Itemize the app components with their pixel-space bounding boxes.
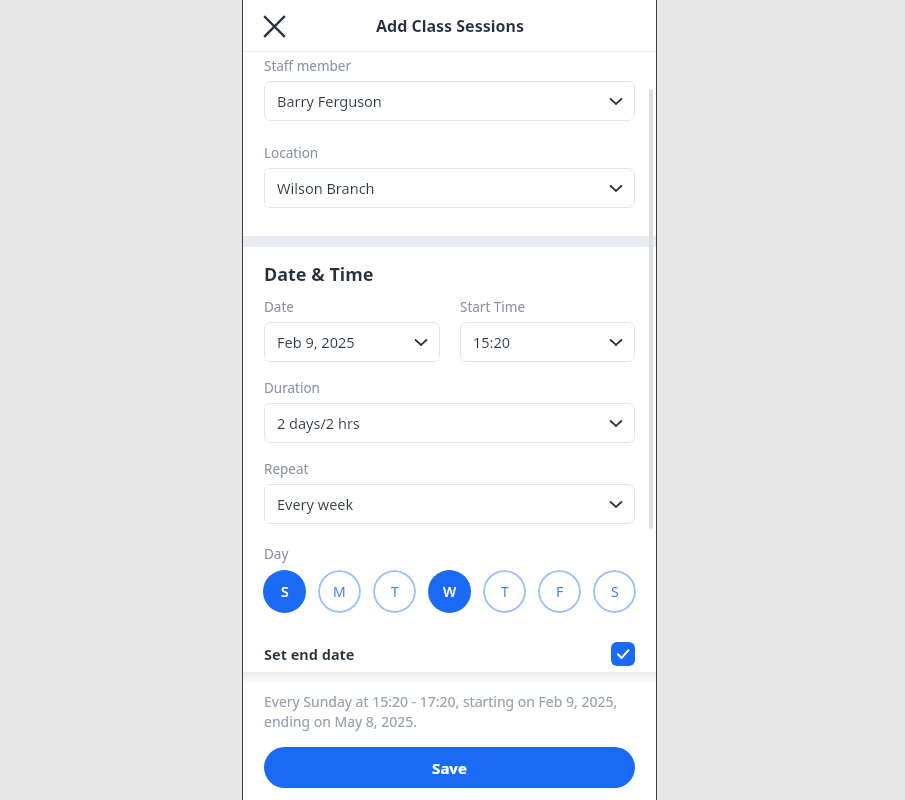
staticText: T: [501, 582, 509, 601]
button[interactable]: M: [318, 570, 361, 613]
staticText: 15:20: [473, 332, 511, 352]
staticText: S: [281, 582, 289, 601]
button[interactable]: Every week: [264, 484, 635, 524]
staticText: Barry Ferguson: [277, 91, 382, 111]
button[interactable]: Wilson Branch: [264, 168, 635, 208]
staticText: Set end date: [264, 644, 355, 664]
button[interactable]: Close: [252, 4, 296, 48]
staticText: Add Class Sessions: [376, 15, 524, 37]
staticText: T: [391, 582, 399, 601]
staticText: Repeat: [264, 460, 309, 478]
staticText: Start Time: [460, 298, 526, 316]
button[interactable]: F: [538, 570, 581, 613]
staticText: W: [443, 582, 457, 601]
button[interactable]: Barry Ferguson: [264, 81, 635, 121]
button[interactable]: S: [263, 570, 306, 613]
button[interactable]: 15:20: [460, 322, 635, 362]
staticText: Day: [264, 545, 289, 563]
staticText: Save: [432, 758, 467, 778]
button[interactable]: W: [428, 570, 471, 613]
staticText: Duration: [264, 379, 320, 397]
staticText: Staff member: [264, 57, 352, 75]
button[interactable]: Save: [264, 747, 635, 788]
staticText: Wilson Branch: [277, 178, 375, 198]
staticText: S: [611, 582, 619, 601]
staticText: Feb 9, 2025: [277, 332, 355, 352]
staticText: Every Sunday at 15:20 - 17:20, starting …: [264, 692, 635, 731]
button[interactable]: Set end date: [242, 636, 657, 672]
staticText: Date & Time: [264, 262, 374, 287]
staticText: 2 days/2 hrs: [277, 413, 360, 433]
button[interactable]: S: [593, 570, 636, 613]
staticText: Location: [264, 144, 319, 162]
staticText: Every week: [277, 494, 354, 514]
staticText: Date: [264, 298, 294, 316]
button[interactable]: T: [483, 570, 526, 613]
button[interactable]: T: [373, 570, 416, 613]
button[interactable]: 2 days/2 hrs: [264, 403, 635, 443]
staticText: F: [556, 582, 564, 601]
staticText: M: [333, 582, 346, 601]
button[interactable]: Feb 9, 2025: [264, 322, 440, 362]
